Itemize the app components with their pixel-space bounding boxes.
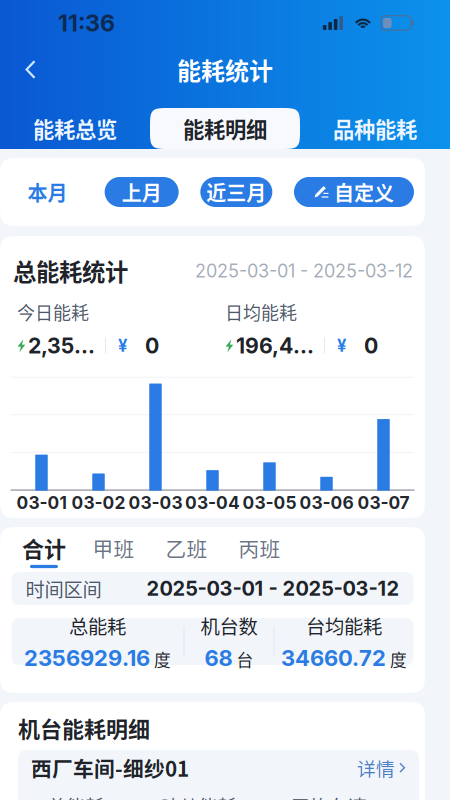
button[interactable]: 品种能耗: [300, 108, 450, 149]
staticText: 0: [364, 333, 378, 359]
staticText: 2,35...: [28, 333, 95, 359]
staticText: 68: [204, 645, 232, 671]
button[interactable]: 上月: [105, 177, 179, 207]
button[interactable]: 乙班: [150, 532, 223, 572]
staticText: 机台能耗明细: [18, 712, 150, 744]
staticText: 03-02: [71, 492, 125, 513]
staticText: 03-01: [16, 492, 66, 513]
button[interactable]: 本月: [12, 177, 83, 207]
staticText: 近三月: [206, 177, 266, 206]
staticText: 03-06: [299, 492, 353, 513]
button[interactable]: 详情: [357, 754, 406, 781]
staticText: 能耗总览: [33, 113, 117, 144]
staticText: 能耗统计: [177, 52, 273, 87]
staticText: ¥: [337, 336, 347, 356]
staticText: 03-04: [185, 492, 240, 513]
staticText: 时间区间: [25, 574, 101, 602]
button[interactable]: 能耗总览: [0, 108, 150, 149]
staticText: 合计: [22, 532, 66, 564]
staticText: 本月: [27, 177, 67, 206]
staticText: 上月: [122, 177, 162, 206]
staticText: 台: [236, 647, 253, 671]
staticText: 甲班: [92, 533, 134, 563]
staticText: 0: [145, 333, 159, 359]
staticText: 196,4...: [236, 333, 314, 359]
staticText: 度: [390, 647, 407, 671]
button[interactable]: 自定义: [294, 177, 414, 207]
staticText: 西厂车间-细纱01: [31, 753, 189, 783]
staticText: 机台数: [200, 612, 257, 640]
staticText: 乙班: [165, 533, 207, 563]
staticText: 能耗明细: [183, 113, 267, 144]
button[interactable]: 能耗明细: [150, 108, 300, 149]
staticText: 日均能耗: [225, 299, 297, 325]
button[interactable]: 丙班: [223, 532, 296, 572]
staticText: 34660.72: [281, 645, 386, 671]
staticText: 详情: [357, 754, 395, 781]
staticText: 今日能耗: [17, 299, 89, 325]
staticText: 03-05: [242, 492, 296, 513]
staticText: 度: [154, 647, 171, 671]
button[interactable]: 合计: [11, 532, 77, 572]
staticText: 总能耗: [47, 792, 104, 800]
staticText: 平均车速: [291, 792, 367, 800]
staticText: 台均能耗: [306, 612, 382, 640]
staticText: 11:36: [58, 9, 115, 37]
staticText: 吨纱能耗: [161, 792, 237, 800]
staticText: 品种能耗: [333, 113, 417, 144]
button[interactable]: 甲班: [77, 532, 150, 572]
staticText: 2356929.16: [24, 645, 150, 671]
staticText: 2025-03-01 - 2025-03-12: [146, 576, 399, 601]
staticText: 2025-03-01 - 2025-03-12: [195, 260, 413, 282]
button[interactable]: 返回: [0, 51, 52, 88]
staticText: 丙班: [238, 533, 280, 563]
staticText: ¥: [118, 336, 128, 356]
staticText: 自定义: [334, 177, 394, 206]
staticText: 03-03: [128, 492, 182, 513]
staticText: 总能耗统计: [13, 254, 128, 288]
staticText: 03-07: [357, 492, 409, 513]
staticText: 总能耗: [69, 612, 126, 640]
button[interactable]: 近三月: [200, 177, 272, 207]
